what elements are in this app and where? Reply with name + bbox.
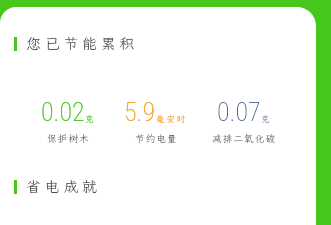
staticText: 省电成就 xyxy=(26,177,101,197)
button[interactable]: 5.9 xyxy=(112,97,200,145)
staticText: 毫安时 xyxy=(156,113,188,124)
staticText: 克 xyxy=(261,113,272,124)
staticText: 您已节能累积 xyxy=(26,34,139,54)
staticText: 0.02 xyxy=(41,97,85,127)
staticText: 保护树木 xyxy=(47,132,90,145)
button[interactable]: 您已节能累积 xyxy=(0,34,316,54)
staticText: 减排二氧化碳 xyxy=(212,132,277,145)
staticText: 克 xyxy=(85,113,96,124)
button[interactable]: 0.02 xyxy=(24,97,112,145)
staticText: 节约电量 xyxy=(135,132,178,145)
button[interactable]: 0.07 xyxy=(200,97,288,145)
staticText: 5.9 xyxy=(124,97,156,127)
button[interactable]: 省电成就 xyxy=(0,177,316,197)
staticText: 0.07 xyxy=(217,97,261,127)
